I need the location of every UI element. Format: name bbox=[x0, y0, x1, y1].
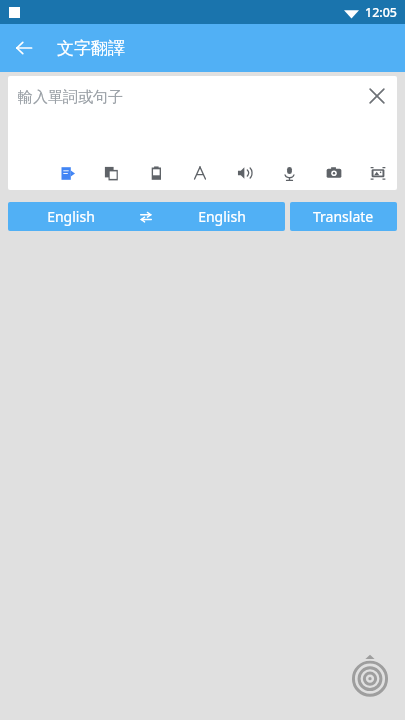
button[interactable]: Translate bbox=[290, 202, 397, 231]
button[interactable]: Camera bbox=[321, 160, 347, 186]
button[interactable]: Clipboard bbox=[143, 160, 169, 186]
button[interactable]: Text size bbox=[187, 160, 213, 186]
staticText: 輸入單詞或句子 bbox=[18, 88, 123, 107]
staticText: Translate bbox=[313, 207, 374, 226]
staticText: English bbox=[198, 207, 246, 226]
button[interactable]: Back bbox=[6, 30, 42, 66]
button[interactable]: Assistive touch bbox=[347, 652, 393, 698]
button[interactable]: Listen bbox=[232, 160, 258, 186]
button[interactable]: Scan image bbox=[365, 160, 391, 186]
staticText: 12:05 bbox=[365, 4, 398, 21]
button[interactable]: Clear bbox=[357, 76, 397, 116]
staticText: English bbox=[47, 207, 95, 226]
button[interactable]: Handwriting bbox=[54, 160, 80, 186]
button[interactable]: Copy bbox=[98, 160, 124, 186]
button[interactable]: English bbox=[8, 202, 285, 231]
button[interactable]: Speak bbox=[276, 160, 302, 186]
staticText: 文字翻譯 bbox=[57, 38, 125, 59]
